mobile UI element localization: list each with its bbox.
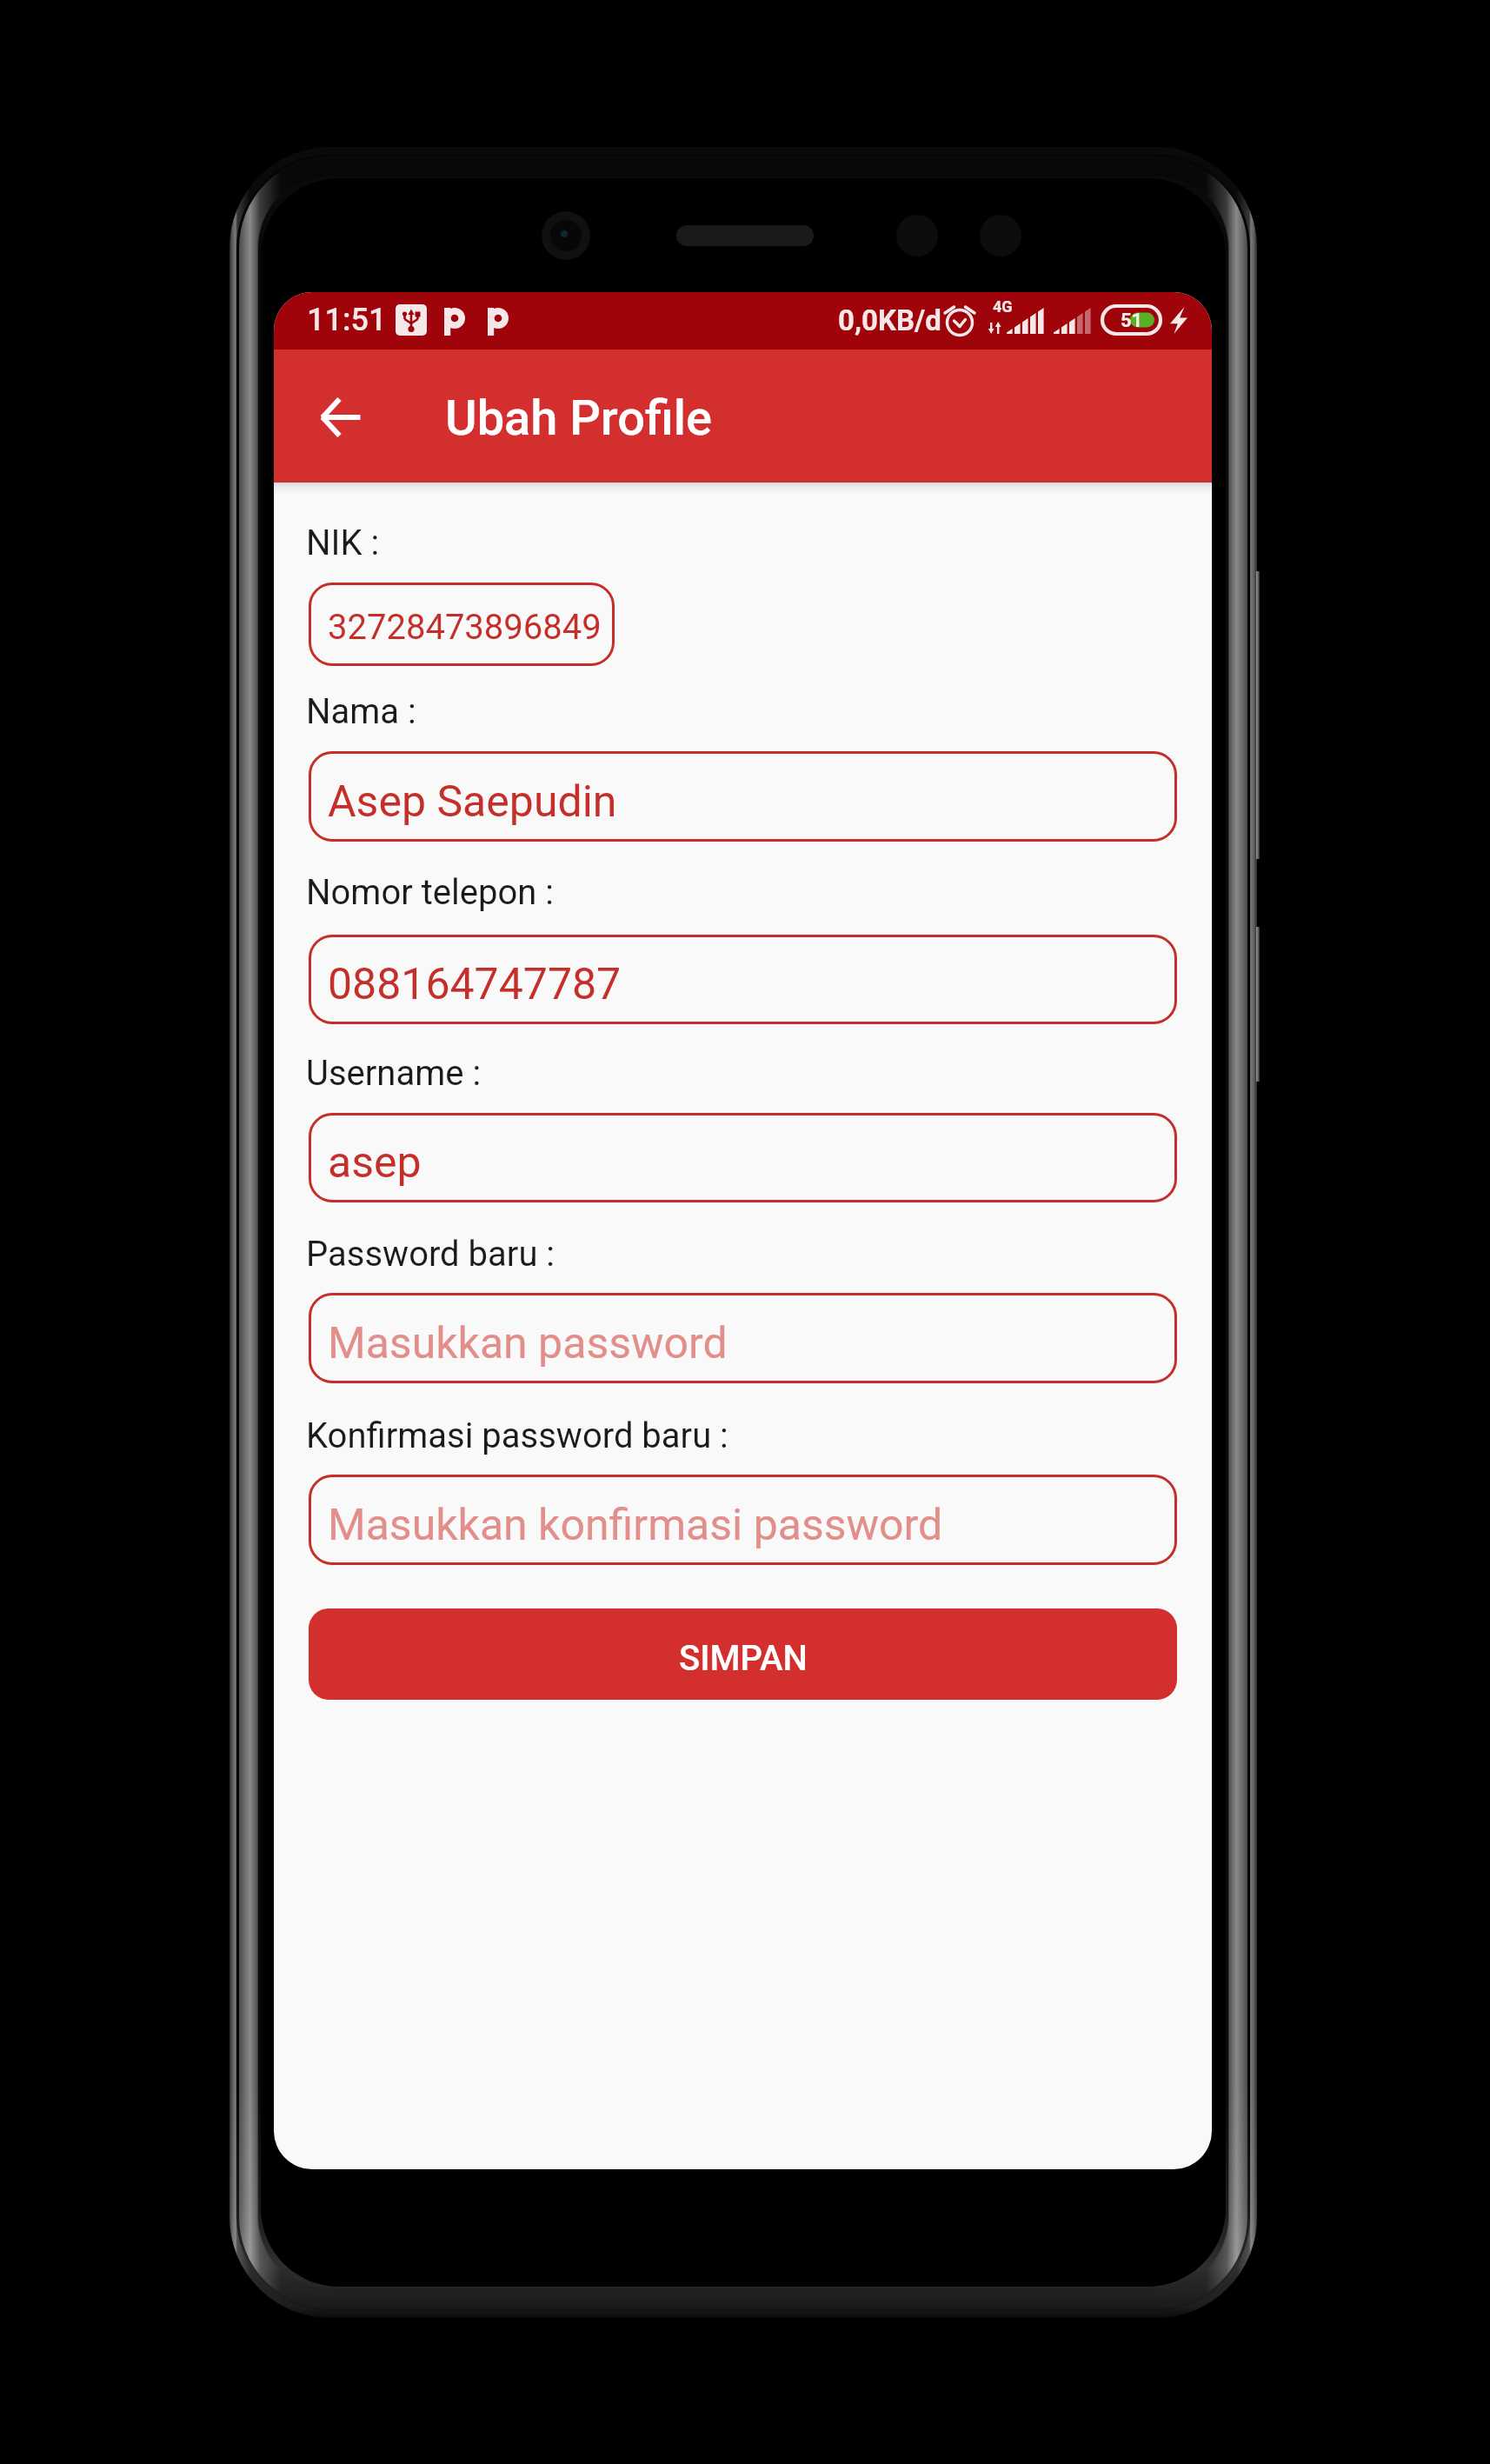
staticText: Konfirmasi password baru : [306, 1415, 728, 1456]
button[interactable]: 32728473896849 [309, 583, 615, 666]
staticText: Nomor telepon : [306, 872, 554, 913]
button[interactable]: Masukkan password [309, 1293, 1177, 1383]
staticText: Username : [306, 1053, 482, 1094]
staticText: 0,0KB/d [838, 303, 941, 337]
button[interactable]: Masukkan konfirmasi password [309, 1475, 1177, 1565]
staticText: Ubah Profile [445, 390, 712, 447]
staticText: NIK : [306, 523, 380, 563]
staticText: Masukkan konfirmasi password [328, 1500, 943, 1551]
button[interactable]: 088164747787 [309, 935, 1177, 1024]
staticText: Password baru : [306, 1234, 555, 1275]
staticText: Nama : [306, 691, 416, 732]
staticText: 11:51 [307, 302, 387, 338]
staticText: 4G [993, 297, 1013, 316]
button[interactable]: SIMPAN [309, 1608, 1177, 1700]
staticText: asep [328, 1137, 422, 1189]
button[interactable]: Back [300, 376, 382, 458]
staticText: Asep Saepudin [328, 776, 617, 828]
staticText: 32728473896849 [328, 607, 602, 648]
staticText: Masukkan password [328, 1318, 728, 1369]
staticText: SIMPAN [679, 1638, 808, 1679]
button[interactable]: Asep Saepudin [309, 751, 1177, 842]
staticText: 51 [1121, 310, 1143, 332]
button[interactable]: asep [309, 1113, 1177, 1202]
staticText: 088164747787 [328, 959, 622, 1010]
